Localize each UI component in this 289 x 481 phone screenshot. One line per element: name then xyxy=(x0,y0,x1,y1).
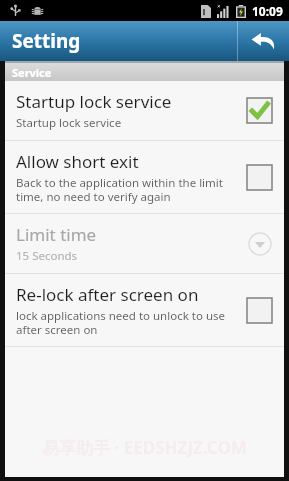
button[interactable]: Unchecked xyxy=(246,164,273,191)
button[interactable]: Startup lock service xyxy=(5,81,284,140)
staticText: Startup lock service xyxy=(16,90,172,113)
button[interactable]: Checked xyxy=(246,97,273,124)
staticText: Re-lock after screen on xyxy=(16,283,199,306)
staticText: Allow short exit xyxy=(16,150,139,173)
staticText: 15 Seconds xyxy=(16,248,78,264)
staticText: Limit time xyxy=(16,223,97,246)
staticText: Service xyxy=(12,65,52,80)
staticText: Startup lock service xyxy=(16,115,122,131)
button[interactable]: Re-lock after screen on xyxy=(5,274,284,346)
staticText: Setting xyxy=(12,28,81,54)
staticText: lock applications need to unlock to use … xyxy=(16,308,225,337)
button[interactable]: Limit time xyxy=(5,214,284,273)
button[interactable]: Allow short exit xyxy=(5,141,284,213)
staticText: Back to the application within the limit… xyxy=(16,175,223,204)
button[interactable]: Select limit time xyxy=(246,230,273,257)
button[interactable]: Unchecked xyxy=(246,297,273,324)
button[interactable]: Back xyxy=(237,21,289,61)
staticText: 易享助手 · EEDSHZJZ.COM xyxy=(5,436,284,459)
staticText: 10:09 xyxy=(252,3,283,19)
